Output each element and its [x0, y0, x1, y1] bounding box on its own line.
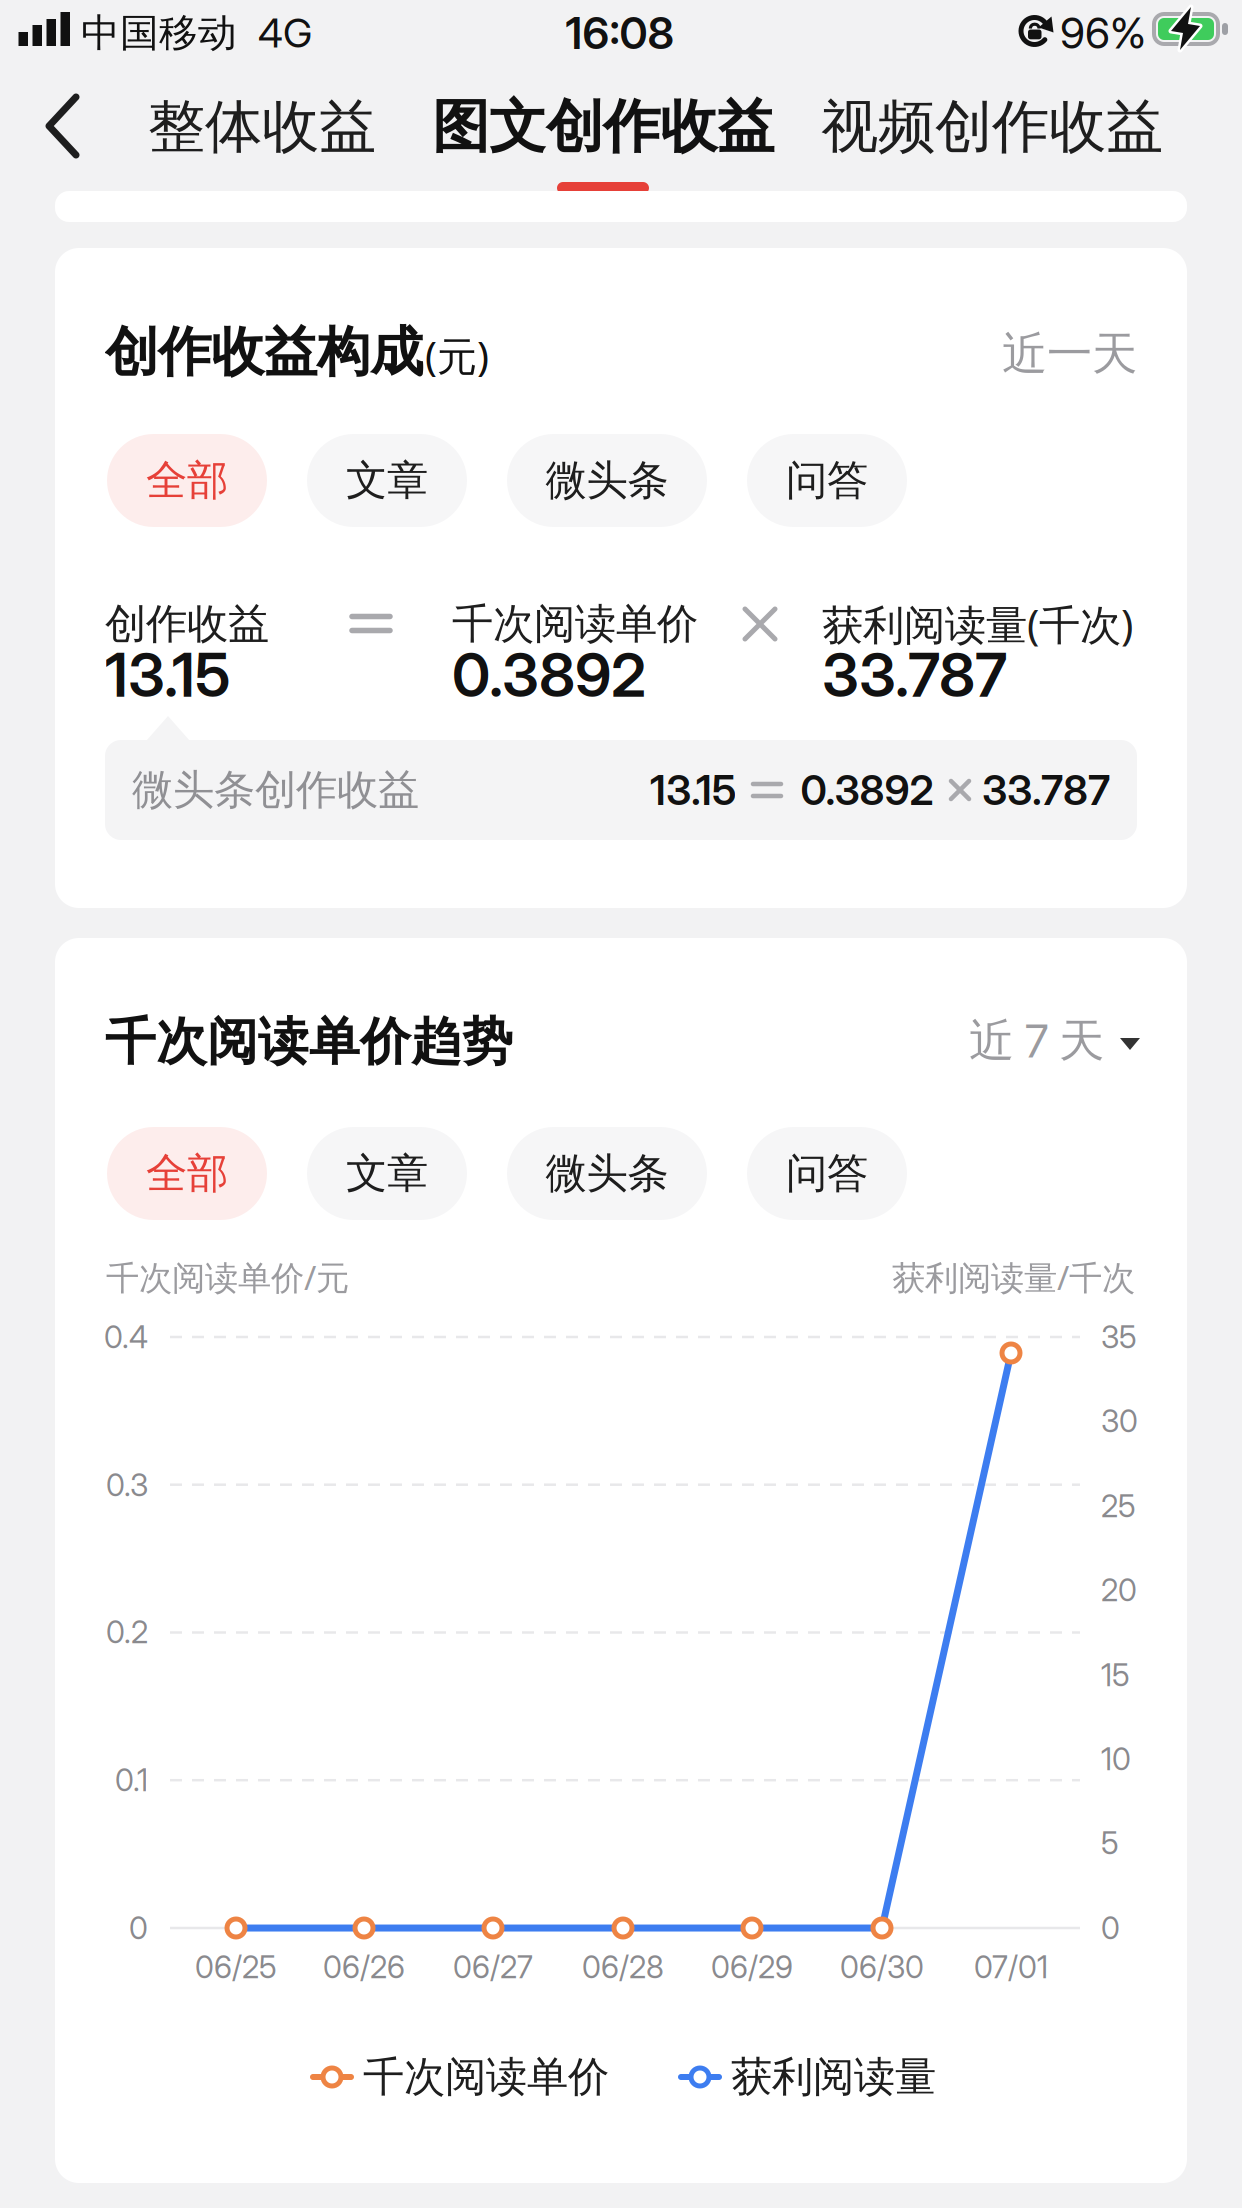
staticText: 0.3892	[452, 639, 646, 711]
staticText: (元)	[425, 329, 489, 382]
staticText: 千次阅读单价	[452, 599, 698, 649]
staticText: 0.1	[115, 1761, 148, 1798]
button[interactable]: Back	[0, 0, 110, 190]
staticText: 文章	[346, 455, 428, 506]
staticText: 视频创作收益	[821, 92, 1163, 162]
staticText: 96%	[1060, 7, 1146, 59]
staticText: 问答	[786, 455, 868, 506]
staticText: 06/25	[195, 1948, 277, 1985]
staticText: 创作收益构成	[105, 319, 423, 385]
staticText: 近	[969, 1013, 1014, 1069]
staticText: 千次阅读单价/元	[106, 1255, 349, 1299]
button[interactable]: 近	[960, 1013, 1140, 1069]
button[interactable]: 微头条	[507, 434, 707, 527]
staticText: 全部	[146, 1148, 228, 1199]
staticText: 全部	[146, 455, 228, 506]
staticText: 06/29	[711, 1948, 793, 1985]
staticText: 微头条创作收益	[132, 765, 419, 815]
staticText: 微头条	[545, 1148, 668, 1199]
staticText: 获利阅读量(千次)	[822, 597, 1133, 651]
button[interactable]: 微头条	[507, 1127, 707, 1220]
staticText: 0.2	[106, 1613, 148, 1650]
button[interactable]: 全部	[107, 434, 267, 527]
staticText: 4G	[258, 9, 312, 57]
staticText: 16:08	[565, 6, 674, 60]
staticText: 7	[1025, 1014, 1048, 1068]
button[interactable]: 全部	[107, 1127, 267, 1220]
button[interactable]: 整体收益	[147, 96, 377, 158]
staticText: 33.787	[822, 639, 1007, 711]
staticText: 千次阅读单价趋势	[105, 1011, 513, 1073]
staticText: 06/26	[323, 1948, 405, 1985]
staticText: 06/28	[582, 1948, 664, 1985]
staticText: 获利阅读量/千次	[892, 1255, 1135, 1299]
staticText: 33.787	[982, 765, 1110, 815]
staticText: 近一天	[1002, 326, 1137, 382]
button[interactable]: 图文创作收益	[428, 95, 778, 159]
staticText: 5	[1101, 1824, 1119, 1861]
button[interactable]: 问答	[747, 434, 907, 527]
button[interactable]: 文章	[307, 1127, 467, 1220]
staticText: 10	[1101, 1740, 1131, 1777]
staticText: 天	[1059, 1013, 1104, 1069]
staticText: 微头条	[545, 455, 668, 506]
staticText: 30	[1101, 1402, 1138, 1439]
button[interactable]: 文章	[307, 434, 467, 527]
staticText: 13.15	[105, 639, 230, 711]
staticText: 15	[1101, 1656, 1130, 1693]
staticText: 0.4	[104, 1318, 148, 1355]
staticText: 13.15	[650, 765, 736, 815]
staticText: 问答	[786, 1148, 868, 1199]
staticText: 0.3	[106, 1466, 148, 1503]
button[interactable]: 问答	[747, 1127, 907, 1220]
staticText: 0.3892	[800, 765, 933, 815]
staticText: 35	[1101, 1318, 1137, 1355]
staticText: 06/27	[453, 1948, 533, 1985]
staticText: 20	[1101, 1571, 1137, 1608]
staticText: 0	[1101, 1909, 1120, 1946]
staticText: 图文创作收益	[432, 92, 774, 162]
staticText: 07/01	[974, 1948, 1048, 1985]
staticText: 创作收益	[105, 599, 269, 649]
staticText: 06/30	[840, 1948, 924, 1985]
staticText: 文章	[346, 1148, 428, 1199]
staticText: 25	[1101, 1487, 1136, 1524]
staticText: 千次阅读单价	[363, 2052, 609, 2102]
staticText: 获利阅读量	[731, 2052, 936, 2102]
button[interactable]: 视频创作收益	[812, 96, 1172, 158]
staticText: 整体收益	[148, 92, 376, 162]
staticText: 中国移动	[81, 9, 237, 57]
staticText: 0	[129, 1909, 148, 1946]
